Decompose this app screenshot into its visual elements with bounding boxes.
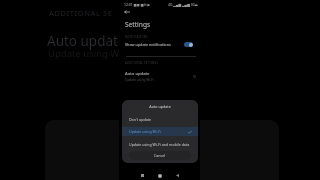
button[interactable]: Back [124,9,130,15]
staticText: Update using Wi-Fi [125,78,154,82]
staticText: Show update notifications [125,42,184,47]
staticText: Cancel [154,153,166,158]
button[interactable]: Recents [138,171,147,180]
staticText: Update using Wi-Fi [129,129,188,134]
button[interactable]: Cancel [129,151,191,160]
staticText: Settings [125,20,151,29]
button[interactable]: Back [173,171,182,180]
button[interactable]: Don't update [122,114,198,124]
staticText: Update using Wi-Fi and mobile data [129,142,190,147]
button[interactable]: Update using Wi-Fi and mobile data [122,139,198,149]
staticText: Auto update [125,71,150,77]
staticText: NOTIFICATIONS [125,35,148,39]
staticText: Don't update [129,117,152,122]
button[interactable]: Show update notifications [119,40,200,49]
staticText: 4G ▂▄▆ ▂▄▆ 92▬ [168,2,198,7]
staticText: Auto update [122,104,198,109]
staticText: ADDITIONAL SETTINGS [125,61,159,65]
staticText: 12:01 ■● ■✉ ▶ [124,2,151,7]
staticText: ADDITIONAL SE [49,8,113,18]
button[interactable]: Home [155,171,164,180]
staticText: Auto update [47,32,126,50]
staticText: Update using W [48,47,120,60]
button[interactable]: Update using Wi-Fi [122,127,198,136]
button[interactable]: Auto update [119,71,200,82]
